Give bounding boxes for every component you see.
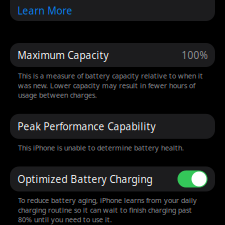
button[interactable]: Optimized Battery Charging (10, 166, 215, 191)
staticText: Learn More (17, 4, 72, 17)
button[interactable]: Learn More (10, 0, 215, 21)
staticText: To reduce battery aging, iPhone learns f… (18, 195, 197, 224)
staticText: This is a measure of battery capacity re… (18, 71, 203, 100)
staticText: Optimized Battery Charging (17, 172, 152, 186)
staticText: 100% (181, 48, 207, 62)
staticText: Maximum Capacity (17, 48, 108, 62)
staticText: This iPhone is unable to determine batte… (18, 143, 184, 152)
staticText: Peak Performance Capability (17, 120, 155, 133)
